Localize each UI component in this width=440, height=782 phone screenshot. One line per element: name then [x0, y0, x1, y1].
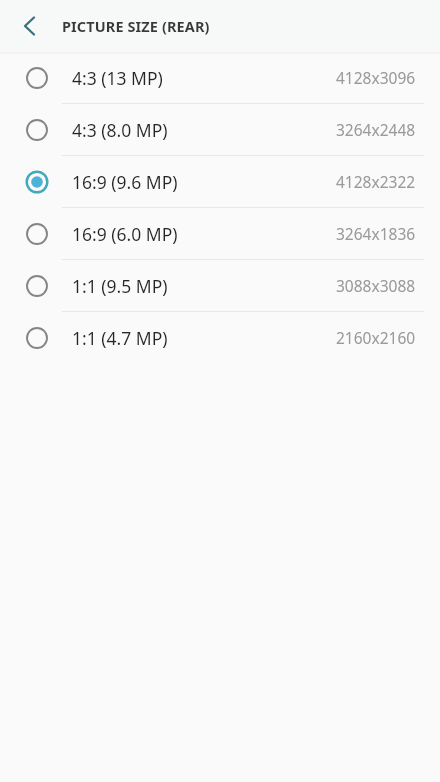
staticText: 2160x2160 [336, 327, 416, 348]
staticText: 16:9 (9.6 MP) [72, 170, 178, 194]
button[interactable] [12, 9, 46, 43]
staticText: 4:3 (13 MP) [72, 66, 163, 90]
staticText: 3264x1836 [336, 223, 416, 244]
staticText: PICTURE SIZE (REAR) [62, 16, 210, 36]
staticText: 3264x2448 [336, 119, 416, 140]
staticText: 3088x3088 [336, 275, 416, 296]
staticText: 4:3 (8.0 MP) [72, 118, 168, 142]
button[interactable]: 4:3 (13 MP) [0, 52, 440, 103]
staticText: 4128x3096 [336, 67, 416, 88]
staticText: 4128x2322 [336, 171, 416, 192]
staticText: 1:1 (4.7 MP) [72, 326, 168, 350]
button[interactable]: 16:9 (9.6 MP) [0, 156, 440, 207]
button[interactable]: 1:1 (9.5 MP) [0, 260, 440, 311]
button[interactable]: 4:3 (8.0 MP) [0, 104, 440, 155]
button[interactable]: 1:1 (4.7 MP) [0, 312, 440, 363]
button[interactable]: 16:9 (6.0 MP) [0, 208, 440, 259]
staticText: 16:9 (6.0 MP) [72, 222, 178, 246]
staticText: 1:1 (9.5 MP) [72, 274, 168, 298]
